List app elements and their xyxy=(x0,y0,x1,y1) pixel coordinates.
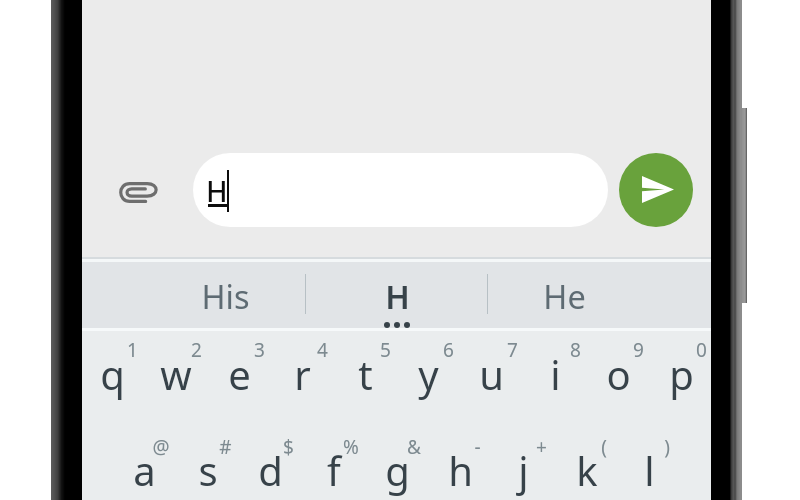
staticText: 7 xyxy=(507,337,518,363)
button[interactable]: f xyxy=(302,419,365,500)
button[interactable]: e xyxy=(208,323,271,415)
staticText: $ xyxy=(283,434,294,460)
button[interactable]: d xyxy=(239,419,302,500)
staticText: ( xyxy=(601,434,607,460)
button[interactable]: u xyxy=(460,323,523,415)
staticText: % xyxy=(343,434,359,460)
staticText: 8 xyxy=(570,337,581,363)
button[interactable]: k xyxy=(555,419,618,500)
button[interactable]: His xyxy=(145,262,305,328)
button[interactable]: y xyxy=(397,323,460,415)
staticText: u xyxy=(479,347,504,401)
staticText: f xyxy=(327,443,341,497)
button[interactable]: Send xyxy=(619,153,693,227)
staticText: p xyxy=(669,347,694,401)
staticText: k xyxy=(576,443,598,497)
button[interactable]: Attach file xyxy=(102,156,174,228)
staticText: H xyxy=(385,274,410,318)
button[interactable]: s xyxy=(176,419,239,500)
button[interactable]: j xyxy=(492,419,555,500)
staticText: e xyxy=(228,347,251,401)
staticText: His xyxy=(201,274,250,318)
staticText: w xyxy=(160,347,192,401)
button[interactable]: Power button xyxy=(742,108,747,303)
staticText: t xyxy=(358,347,373,401)
staticText: H xyxy=(206,171,228,210)
staticText: l xyxy=(644,443,655,497)
staticText: @ xyxy=(152,434,170,460)
button[interactable]: r xyxy=(271,323,334,415)
staticText: s xyxy=(198,443,218,497)
staticText: a xyxy=(133,443,156,497)
staticText: q xyxy=(100,347,125,401)
staticText: 3 xyxy=(254,337,265,363)
staticText: - xyxy=(474,434,481,460)
staticText: o xyxy=(606,347,631,401)
button[interactable]: H xyxy=(317,262,477,328)
staticText: y xyxy=(418,347,439,401)
staticText: 6 xyxy=(443,337,454,363)
staticText: 0 xyxy=(696,337,707,363)
button[interactable]: p xyxy=(650,323,713,415)
staticText: d xyxy=(258,443,283,497)
staticText: # xyxy=(219,434,232,460)
staticText: 4 xyxy=(317,337,328,363)
button[interactable]: l xyxy=(618,419,681,500)
staticText: + xyxy=(536,434,547,460)
button[interactable]: H xyxy=(193,153,608,227)
staticText: 1 xyxy=(127,337,138,363)
button[interactable]: a xyxy=(113,419,176,500)
staticText: 5 xyxy=(380,337,391,363)
staticText: 9 xyxy=(633,337,644,363)
staticText: j xyxy=(518,443,529,497)
button[interactable]: h xyxy=(429,419,492,500)
staticText: & xyxy=(407,434,421,460)
button[interactable]: i xyxy=(524,323,587,415)
button[interactable]: q xyxy=(81,323,144,415)
staticText: He xyxy=(543,274,586,318)
staticText: i xyxy=(550,347,561,401)
button[interactable]: He xyxy=(484,262,644,328)
button[interactable]: o xyxy=(587,323,650,415)
staticText: r xyxy=(294,347,311,401)
button[interactable]: t xyxy=(334,323,397,415)
button[interactable]: w xyxy=(144,323,207,415)
staticText: h xyxy=(448,443,473,497)
staticText: ) xyxy=(664,434,670,460)
staticText: g xyxy=(385,443,410,497)
staticText: 2 xyxy=(191,337,202,363)
button[interactable]: g xyxy=(366,419,429,500)
